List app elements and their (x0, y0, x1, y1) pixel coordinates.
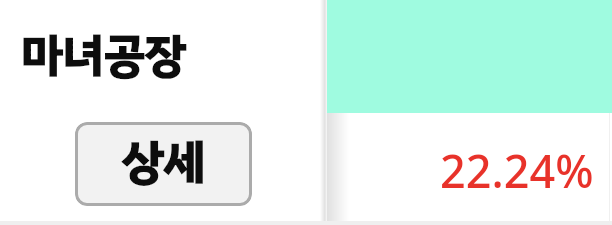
button[interactable]: 마녀공장 (22, 21, 187, 90)
staticText: 22.24% (440, 140, 594, 201)
button[interactable]: 22.24% (327, 113, 609, 221)
staticText: 상세 (122, 127, 206, 198)
button[interactable]: 상세 (75, 122, 252, 206)
